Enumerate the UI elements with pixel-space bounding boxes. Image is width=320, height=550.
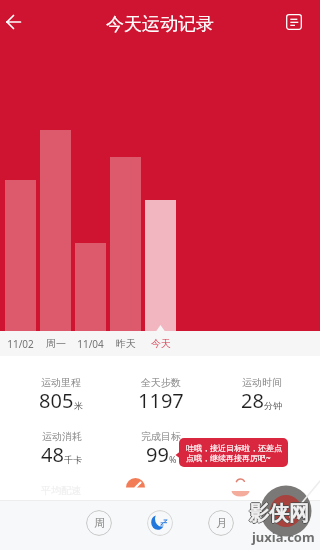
button[interactable]: Sleep — [147, 510, 173, 536]
staticText: 今天运动记录 — [106, 13, 214, 36]
staticText: 月 — [216, 516, 227, 530]
button[interactable]: 运动里程 — [11, 376, 111, 416]
staticText: 千卡 — [64, 454, 82, 465]
button[interactable]: Back — [0, 8, 30, 38]
staticText: 哇哦，接近目标啦，还差点 点哦，继续再接再厉吧~ — [186, 443, 282, 463]
button[interactable]: Records — [280, 8, 308, 36]
staticText: 米 — [74, 400, 83, 411]
staticText: 今天 — [151, 337, 171, 350]
staticText: 影侠网 — [249, 502, 309, 527]
button[interactable]: 昨天 — [108, 331, 143, 356]
button[interactable]: 哇哦，接近目标啦，还差点 点哦，继续再接再厉吧~ — [179, 438, 288, 467]
staticText: 运动消耗 — [42, 430, 82, 443]
staticText: 805 — [39, 387, 74, 414]
staticText: 运动时间 — [242, 376, 282, 389]
staticText: 影侠网 — [250, 501, 310, 526]
button[interactable]: 11/04 — [73, 331, 108, 356]
staticText: 昨天 — [116, 337, 136, 350]
staticText: % — [169, 453, 177, 465]
staticText: 99 — [146, 441, 169, 468]
staticText: 影侠网 — [248, 501, 308, 526]
staticText: 运动里程 — [41, 376, 81, 389]
button[interactable]: 完成目标 — [111, 430, 211, 470]
button[interactable]: 全天步数 — [111, 376, 211, 416]
button[interactable]: 11/02 — [3, 331, 38, 356]
staticText: 48 — [41, 441, 64, 468]
staticText: 1197 — [138, 387, 184, 414]
button[interactable]: 今天 — [143, 331, 178, 356]
staticText: 影侠网 — [249, 500, 309, 525]
button[interactable]: 月 — [208, 510, 234, 536]
button[interactable]: 运动时间 — [211, 376, 311, 416]
staticText: 11/02 — [7, 337, 34, 351]
staticText: 28 — [241, 387, 264, 414]
staticText: 完成目标 — [141, 430, 181, 443]
staticText: 周一 — [46, 337, 66, 350]
staticText: 分钟 — [264, 400, 282, 411]
staticText: juxia.com — [252, 528, 315, 546]
staticText: 全天步数 — [141, 376, 181, 389]
button[interactable]: 运动消耗 — [11, 430, 111, 470]
button[interactable]: 周 — [86, 510, 112, 536]
staticText: 平均配速 — [41, 484, 81, 497]
staticText: 影侠网 — [249, 501, 309, 526]
button[interactable]: 周一 — [38, 331, 73, 356]
staticText: 11/04 — [77, 337, 104, 351]
staticText: 周 — [94, 516, 105, 530]
